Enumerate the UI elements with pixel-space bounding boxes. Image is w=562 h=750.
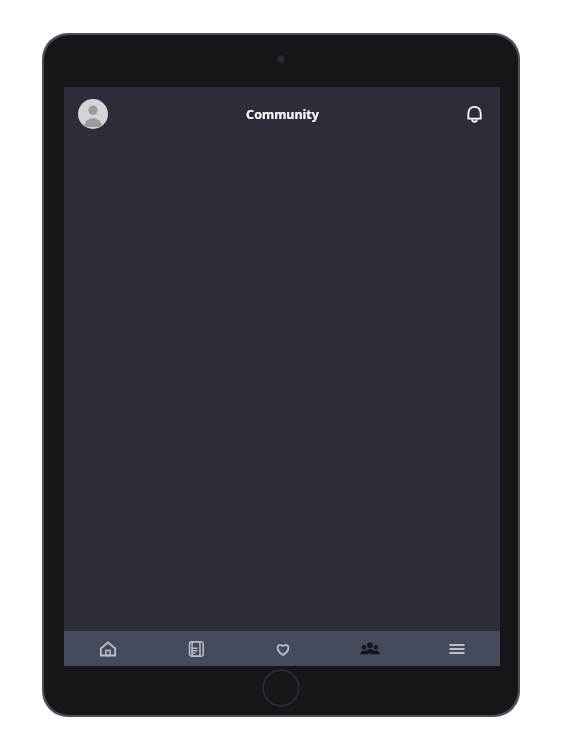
- button[interactable]: Home: [64, 631, 152, 666]
- button[interactable]: Community: [326, 631, 413, 666]
- button[interactable]: Home button: [262, 669, 300, 707]
- button[interactable]: Profile: [78, 99, 108, 129]
- button[interactable]: Feed: [152, 631, 239, 666]
- button[interactable]: Notifications: [460, 100, 488, 128]
- staticText: Community: [246, 106, 319, 123]
- button[interactable]: Menu: [413, 631, 500, 666]
- button[interactable]: Favourites: [239, 631, 326, 666]
